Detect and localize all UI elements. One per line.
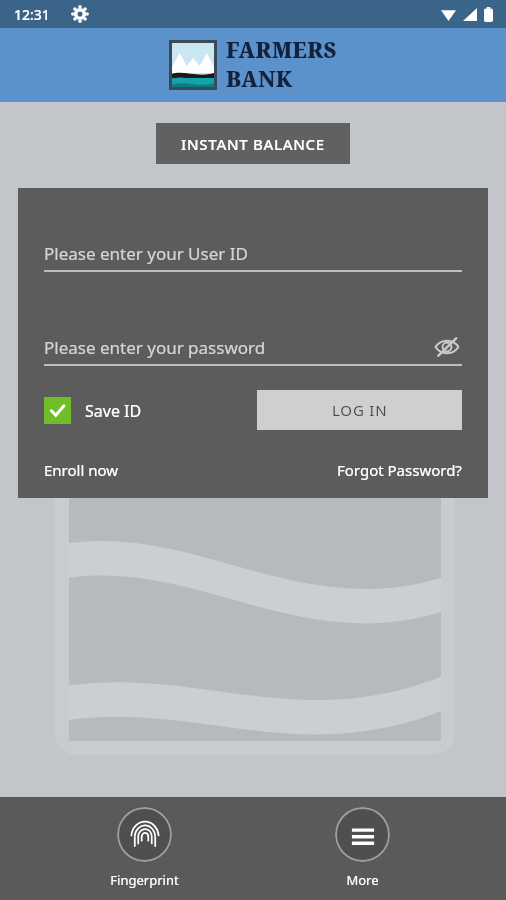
button[interactable]: Please enter your User ID [44,234,462,272]
button[interactable]: Enroll now [44,460,119,480]
button[interactable]: Fingerprint [69,807,219,889]
button[interactable]: Please enter your password [44,328,462,366]
button[interactable]: LOG IN [257,390,462,430]
button[interactable]: Save ID [44,397,142,424]
button[interactable]: Show password [432,332,462,362]
staticText: INSTANT BALANCE [181,134,325,154]
staticText: Save ID [85,400,142,422]
staticText: FARMERS [226,36,337,65]
staticText: 12:31 [14,5,50,24]
staticText: Enroll now [44,460,119,480]
staticText: Fingerprint [110,871,179,889]
staticText: Please enter your User ID [44,242,248,265]
button[interactable]: Forgot Password? [337,460,462,480]
staticText: More [346,871,379,889]
staticText: LOG IN [332,400,388,420]
staticText: Forgot Password? [337,460,462,480]
staticText: BANK [226,65,293,94]
button[interactable]: More [287,807,437,889]
button[interactable]: INSTANT BALANCE [156,123,350,164]
staticText: Please enter your password [44,336,266,359]
